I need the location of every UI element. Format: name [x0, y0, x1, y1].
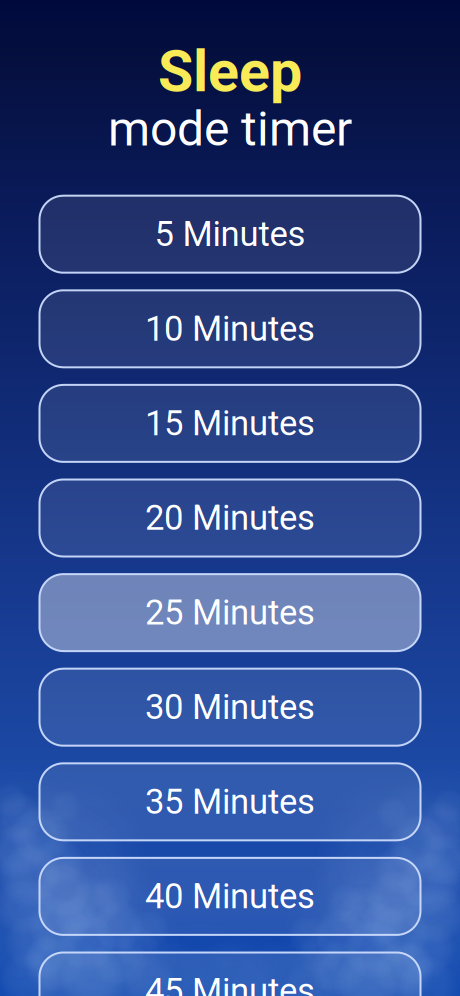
staticText: 35 Minutes: [145, 781, 315, 822]
button[interactable]: 45 Minutes: [39, 952, 420, 996]
staticText: 15 Minutes: [145, 403, 315, 444]
staticText: 25 Minutes: [145, 592, 315, 633]
staticText: 40 Minutes: [145, 876, 315, 917]
staticText: mode timer: [108, 101, 352, 157]
button[interactable]: 30 Minutes: [39, 669, 420, 746]
staticText: 30 Minutes: [145, 687, 315, 727]
button[interactable]: 40 Minutes: [39, 858, 420, 935]
button[interactable]: 20 Minutes: [39, 479, 420, 556]
staticText: 5 Minutes: [154, 214, 305, 254]
staticText: 20 Minutes: [145, 498, 315, 538]
button[interactable]: 35 Minutes: [39, 763, 420, 840]
staticText: 45 Minutes: [145, 971, 315, 996]
button[interactable]: 10 Minutes: [39, 290, 420, 367]
staticText: 10 Minutes: [145, 308, 315, 349]
staticText: Sleep: [158, 38, 302, 105]
button[interactable]: 15 Minutes: [39, 385, 420, 462]
button[interactable]: 25 Minutes: [39, 574, 420, 651]
button[interactable]: 5 Minutes: [39, 196, 420, 273]
